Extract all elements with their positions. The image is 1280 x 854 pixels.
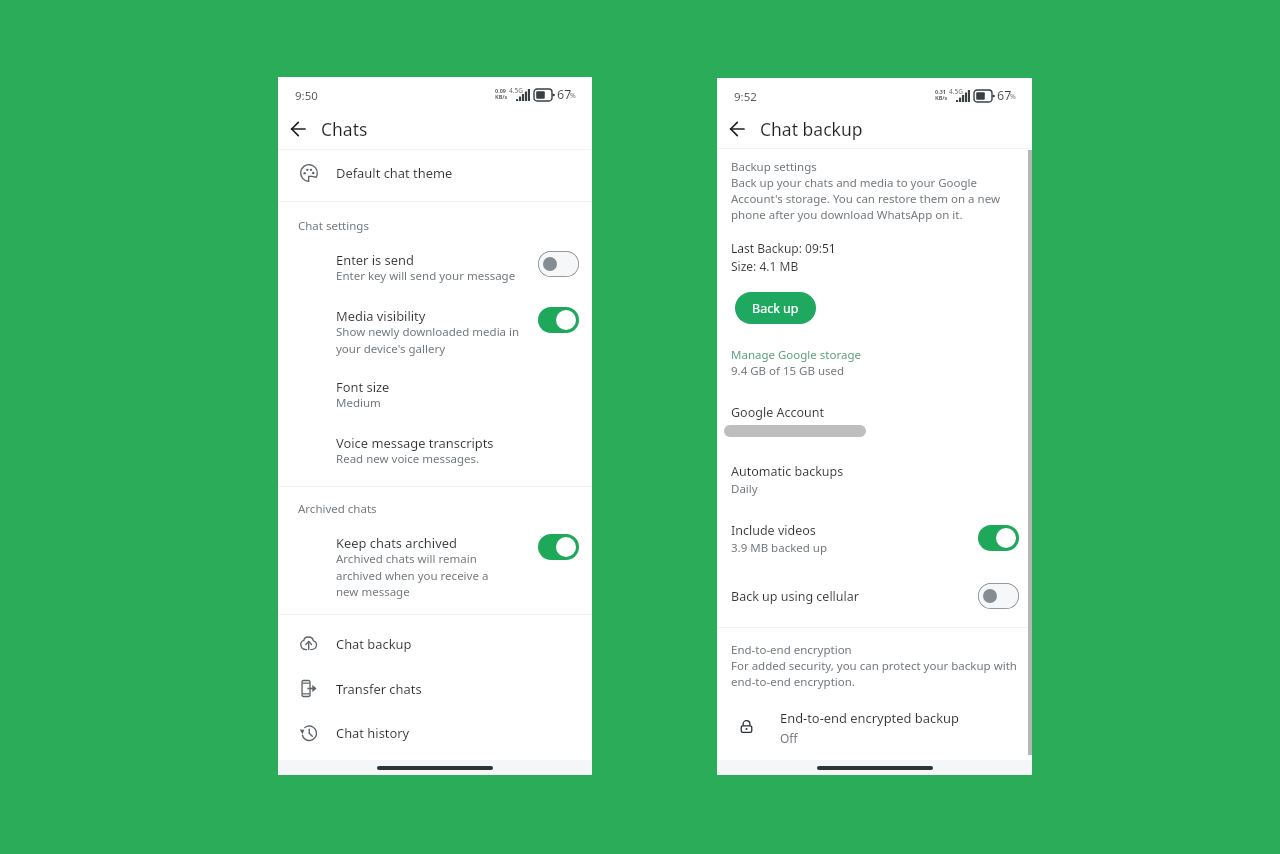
button[interactable]: Switch off <box>978 583 1019 609</box>
staticText: Backup settings Back up your chats and m… <box>731 159 1000 223</box>
button[interactable]: Chat backup <box>278 622 592 666</box>
button[interactable]: Font size <box>278 376 592 414</box>
button[interactable]: Google Account <box>717 400 1032 438</box>
staticText: Include videos <box>731 522 816 539</box>
staticText: Last Backup: 09:51 <box>731 240 836 256</box>
staticText: 0.09 <box>495 87 506 94</box>
staticText: Off <box>780 730 798 746</box>
staticText: Chat backup <box>336 635 412 653</box>
button[interactable]: Media visibility <box>278 305 592 359</box>
staticText: 9:50 <box>295 88 318 104</box>
staticText: Chats <box>321 117 368 141</box>
button[interactable]: Keep chats archived <box>278 532 592 602</box>
staticText: Voice message transcripts <box>336 434 494 452</box>
button[interactable]: Transfer chats <box>278 667 592 711</box>
staticText: 4.5G <box>509 86 523 95</box>
staticText: Chat backup <box>760 117 863 141</box>
staticText: KB/s <box>495 93 508 100</box>
staticText: Enter is send <box>336 251 414 269</box>
staticText: Default chat theme <box>336 164 453 182</box>
staticText: Archived chats <box>298 501 377 517</box>
staticText: 9:52 <box>734 89 757 105</box>
button[interactable]: Back up <box>735 292 816 324</box>
staticText: Medium <box>336 395 381 411</box>
button[interactable]: Switch off <box>538 251 579 277</box>
staticText: Media visibility <box>336 307 426 325</box>
button[interactable]: Back up using cellular <box>717 578 1032 616</box>
staticText: 4.5G <box>949 87 963 96</box>
staticText: 67 <box>997 87 1012 104</box>
staticText: Google Account <box>731 404 824 421</box>
staticText: 67 <box>557 86 572 103</box>
staticText: 0.31 <box>935 88 946 95</box>
staticText: Enter key will send your message <box>336 268 516 284</box>
button[interactable]: Back <box>281 112 315 146</box>
staticText: % <box>570 91 576 101</box>
staticText: 9.4 GB of 15 GB used <box>731 363 845 379</box>
staticText: Manage Google storage <box>731 347 861 363</box>
button[interactable]: Manage Google storage <box>729 346 861 365</box>
button[interactable]: Back <box>720 112 754 146</box>
button[interactable]: Enter is send <box>278 249 592 287</box>
button[interactable]: Default chat theme <box>278 151 592 195</box>
staticText: Read new voice messages. <box>336 451 480 467</box>
staticText: End-to-end encryption For added security… <box>731 642 1017 690</box>
staticText: Archived chats will remain archived when… <box>336 551 489 599</box>
button[interactable]: End-to-end encrypted backup <box>717 698 1032 744</box>
button[interactable]: Voice message transcripts <box>278 432 592 470</box>
staticText: Chat settings <box>298 218 369 234</box>
button[interactable]: Switch on <box>538 534 579 560</box>
staticText: End-to-end encrypted backup <box>780 709 959 727</box>
staticText: Automatic backups <box>731 463 844 480</box>
button[interactable]: Chat history <box>278 711 592 755</box>
staticText: 3.9 MB backed up <box>731 540 828 556</box>
button[interactable]: Automatic backups <box>717 458 1032 498</box>
staticText: Chat history <box>336 724 410 742</box>
staticText: Font size <box>336 378 390 396</box>
staticText: Keep chats archived <box>336 534 457 552</box>
button[interactable]: Include videos <box>717 518 1032 558</box>
staticText: Size: 4.1 MB <box>731 258 799 274</box>
button[interactable]: Switch on <box>538 307 579 333</box>
staticText: Show newly downloaded media in your devi… <box>336 324 520 356</box>
button[interactable]: Switch on <box>978 525 1019 551</box>
staticText: Transfer chats <box>336 680 422 698</box>
staticText: % <box>1010 92 1016 102</box>
staticText: Back up using cellular <box>731 588 859 605</box>
staticText: Back up <box>752 300 799 317</box>
staticText: Daily <box>731 481 758 497</box>
staticText: KB/s <box>935 94 948 101</box>
